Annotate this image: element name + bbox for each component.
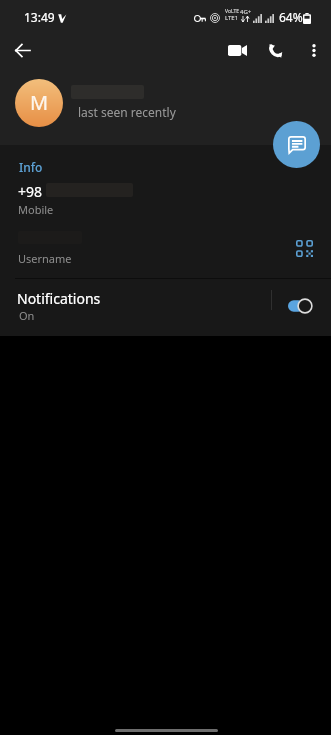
staticText: 64% xyxy=(279,9,303,25)
button[interactable]: QR code xyxy=(292,236,316,260)
button[interactable]: Notifications toggle xyxy=(282,294,314,318)
button[interactable]: Profile photo xyxy=(15,79,63,127)
button[interactable]: Send message xyxy=(273,121,320,168)
staticText: M xyxy=(30,89,49,116)
staticText: Mobile xyxy=(18,202,54,217)
staticText: VoLTE xyxy=(225,8,240,15)
staticText: Notifications xyxy=(17,289,101,308)
button[interactable]: +98 xyxy=(0,176,331,224)
button[interactable]: Call xyxy=(258,33,292,67)
button[interactable]: Notifications xyxy=(0,279,331,329)
staticText: +98 xyxy=(18,182,43,201)
button[interactable]: Video call xyxy=(220,33,254,67)
staticText: LTE1 xyxy=(225,14,239,22)
button[interactable]: More options xyxy=(297,33,331,67)
staticText: Username xyxy=(18,251,72,266)
staticText: On xyxy=(19,308,35,323)
button[interactable]: Username xyxy=(0,228,331,275)
button[interactable]: Back xyxy=(6,34,38,66)
staticText: last seen recently xyxy=(78,104,176,120)
staticText: Info xyxy=(19,159,43,175)
staticText: 13:49 xyxy=(24,9,55,25)
staticText: 4G+ xyxy=(240,8,252,16)
